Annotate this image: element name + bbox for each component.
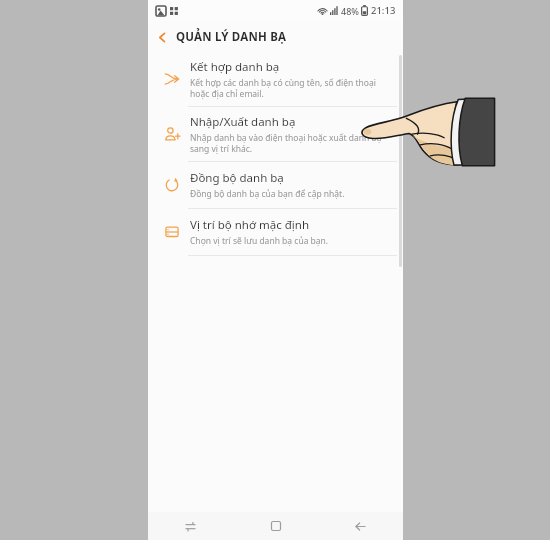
staticText: Đồng bộ danh bạ của bạn để cập nhật. xyxy=(190,188,345,200)
staticText: 48% xyxy=(341,5,359,17)
staticText: Nhập danh bạ vào điện thoại hoặc xuất da… xyxy=(190,132,382,154)
staticText: 21:13 xyxy=(371,4,396,17)
button[interactable]: Nhập/Xuất danh bạ xyxy=(148,107,403,161)
staticText: QUẢN LÝ DANH BẠ xyxy=(176,29,287,45)
staticText: Nhập/Xuất danh bạ xyxy=(190,114,296,130)
staticText: Vị trí bộ nhớ mặc định xyxy=(190,217,310,233)
button[interactable]: Back xyxy=(318,512,403,540)
staticText: Kết hợp các danh bạ có cùng tên, số điện… xyxy=(190,77,376,99)
button[interactable]: Vị trí bộ nhớ mặc định xyxy=(148,209,403,255)
staticText: Chọn vị trí sẽ lưu danh bạ của bạn. xyxy=(190,235,329,247)
staticText: Đồng bộ danh bạ xyxy=(190,170,284,186)
button[interactable]: Back xyxy=(148,23,176,51)
button[interactable]: Home xyxy=(233,512,318,540)
button[interactable]: Recents xyxy=(148,512,233,540)
staticText: Kết hợp danh bạ xyxy=(190,59,280,75)
button[interactable]: Đồng bộ danh bạ xyxy=(148,162,403,208)
button[interactable]: Kết hợp danh bạ xyxy=(148,52,403,106)
